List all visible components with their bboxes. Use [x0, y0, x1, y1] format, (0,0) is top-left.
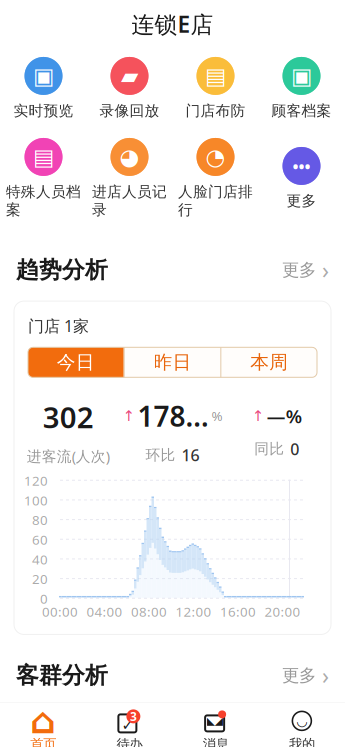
staticText: ▤: [33, 144, 54, 170]
staticText: ↑: [122, 408, 134, 424]
button[interactable]: ⌂: [0, 703, 86, 747]
staticText: 120: [24, 472, 48, 489]
staticText: 消息: [203, 736, 229, 747]
staticText: 录像回放: [99, 102, 159, 120]
staticText: 0: [290, 438, 299, 459]
staticText: 40: [32, 550, 48, 568]
staticText: 首页: [30, 736, 56, 747]
staticText: 100: [24, 491, 48, 509]
staticText: ◡: [297, 713, 307, 728]
button[interactable]: •••: [258, 145, 344, 212]
staticText: 实时预览: [13, 102, 73, 120]
button[interactable]: ◕: [86, 136, 172, 221]
staticText: 人脸门店排行: [178, 183, 253, 219]
staticText: —%: [267, 403, 302, 428]
staticText: 门店布防: [185, 102, 245, 120]
button[interactable]: ▣: [0, 55, 86, 122]
staticText: ▰: [121, 63, 138, 89]
staticText: 更多: [282, 665, 316, 686]
staticText: 3: [130, 708, 137, 724]
button[interactable]: 更多: [272, 656, 329, 695]
staticText: 门店 1家: [28, 315, 89, 336]
staticText: ›: [322, 255, 329, 285]
staticText: 更多: [286, 192, 316, 210]
button[interactable]: ▤: [172, 55, 258, 122]
staticText: 特殊人员档案: [6, 183, 81, 219]
staticText: 08:00: [131, 603, 167, 620]
staticText: 178…: [137, 397, 208, 434]
staticText: 60: [32, 531, 48, 548]
staticText: 20: [32, 570, 48, 588]
staticText: 顾客档案: [271, 102, 331, 120]
button[interactable]: 今日: [28, 347, 124, 377]
button[interactable]: 本周: [221, 347, 317, 377]
staticText: 12:00: [175, 603, 211, 620]
staticText: ◔: [205, 144, 225, 170]
button[interactable]: ◣◢: [172, 703, 259, 747]
staticText: 16: [181, 444, 199, 466]
button[interactable]: ▣: [258, 55, 344, 122]
staticText: 趋势分析: [16, 256, 108, 284]
staticText: ◣◢: [207, 715, 223, 727]
staticText: 更多: [282, 259, 316, 281]
staticText: ↑: [252, 408, 264, 424]
staticText: 环比: [145, 446, 175, 464]
staticText: ›: [322, 660, 329, 691]
staticText: ▣: [291, 63, 312, 89]
staticText: 进店人员记录: [92, 183, 167, 219]
button[interactable]: ◡: [259, 703, 345, 747]
staticText: 今日: [57, 351, 95, 374]
staticText: 302: [43, 397, 94, 436]
staticText: ◕: [119, 144, 139, 170]
button[interactable]: ▰: [86, 55, 172, 122]
staticText: ✓: [121, 717, 133, 733]
button[interactable]: 昨日: [125, 347, 220, 377]
staticText: 待办: [116, 736, 142, 747]
staticText: %: [211, 407, 222, 425]
staticText: 我的: [289, 736, 315, 747]
staticText: ▣: [33, 63, 54, 89]
button[interactable]: 更多: [272, 251, 329, 289]
button[interactable]: ◔: [172, 136, 258, 221]
staticText: ▤: [205, 63, 226, 89]
staticText: 16:00: [220, 603, 256, 620]
staticText: 进客流(人次): [27, 446, 110, 466]
staticText: 04:00: [86, 603, 122, 620]
staticText: •••: [292, 155, 310, 176]
staticText: 昨日: [153, 351, 191, 374]
staticText: 连锁E店: [131, 9, 213, 39]
staticText: 客群分析: [16, 662, 108, 689]
staticText: ⌂: [30, 700, 56, 741]
button[interactable]: ▤: [0, 136, 86, 221]
staticText: 同比: [254, 440, 284, 458]
staticText: 20:00: [264, 603, 300, 620]
staticText: 0: [40, 590, 48, 607]
staticText: 80: [32, 511, 48, 529]
staticText: 00:00: [42, 603, 78, 620]
staticText: 本周: [250, 351, 288, 374]
button[interactable]: ✓: [86, 703, 172, 747]
